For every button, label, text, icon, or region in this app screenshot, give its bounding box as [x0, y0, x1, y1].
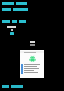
button[interactable]: Footer link — [2, 85, 23, 88]
button[interactable]: List item — [20, 72, 44, 74]
button[interactable]: Section heading — [2, 20, 26, 23]
button[interactable]: Badge — [10, 32, 14, 35]
button[interactable]: App bar — [20, 51, 44, 53]
button[interactable]: List item — [20, 68, 44, 70]
button[interactable]: Heading link one — [2, 2, 27, 5]
button[interactable]: List item — [20, 66, 44, 68]
button[interactable]: App screenshot — [20, 50, 44, 78]
button[interactable]: Heading link two — [2, 8, 28, 11]
button[interactable]: List item — [20, 64, 44, 66]
button[interactable]: List item — [20, 70, 44, 72]
